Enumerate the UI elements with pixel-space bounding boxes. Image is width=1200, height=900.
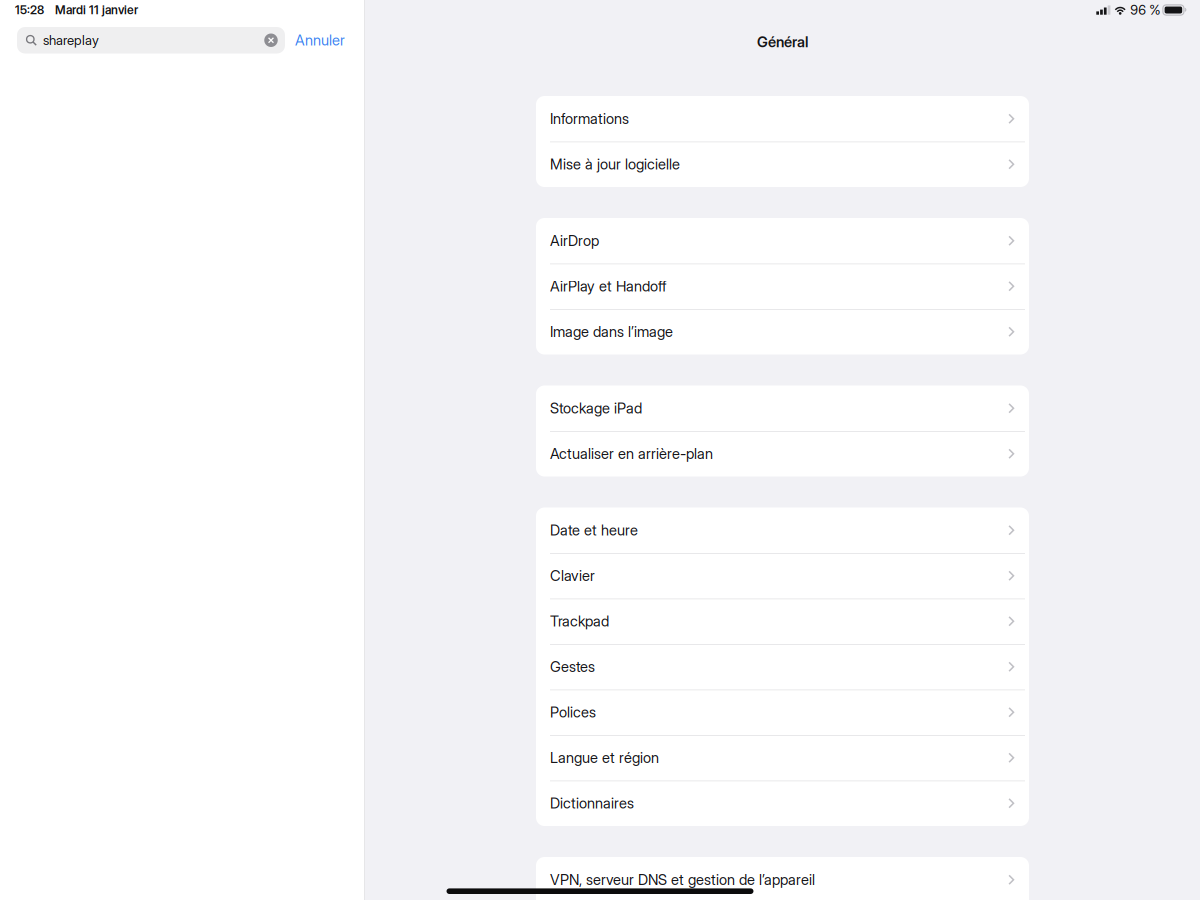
button[interactable]: Date et heure [536,507,1029,553]
staticText: Trackpad [550,613,609,630]
button[interactable]: Clear search [262,31,280,49]
button[interactable]: VPN, serveur DNS et gestion de l’apparei… [536,857,1029,900]
staticText: Actualiser en arrière-plan [550,445,713,462]
button[interactable]: Dictionnaires [536,780,1029,826]
button[interactable]: Mise à jour logicielle [536,141,1029,187]
staticText: Général [757,33,808,51]
button[interactable]: Gestes [536,644,1029,689]
staticText: Date et heure [550,522,638,539]
button[interactable]: Annuler [285,27,355,53]
staticText: AirPlay et Handoff [550,278,666,295]
staticText: Mardi 11 janvier [55,3,138,17]
staticText: Clavier [550,567,595,584]
button[interactable]: Informations [536,96,1029,141]
staticText: Polices [550,704,596,721]
button[interactable]: Polices [536,689,1029,735]
button[interactable]: Clavier [536,553,1029,598]
staticText: shareplay [43,32,99,48]
staticText: Annuler [295,32,345,49]
staticText: 96 % [1130,2,1160,18]
button[interactable]: Stockage iPad [536,385,1029,431]
button[interactable]: Trackpad [536,598,1029,644]
button[interactable]: shareplay [17,27,285,53]
button[interactable]: Langue et région [536,735,1029,780]
button[interactable]: Image dans l’image [536,309,1029,354]
staticText: Image dans l’image [550,323,673,340]
staticText: 15:28 [15,3,44,17]
button[interactable]: Actualiser en arrière-plan [536,431,1029,476]
staticText: VPN, serveur DNS et gestion de l’apparei… [550,871,815,888]
staticText: AirDrop [550,232,599,249]
staticText: Informations [550,110,629,127]
staticText: Langue et région [550,749,659,766]
staticText: Stockage iPad [550,400,642,417]
staticText: Mise à jour logicielle [550,156,680,173]
staticText: Dictionnaires [550,795,634,812]
staticText: Gestes [550,658,595,675]
button[interactable]: AirDrop [536,218,1029,263]
button[interactable]: AirPlay et Handoff [536,263,1029,309]
